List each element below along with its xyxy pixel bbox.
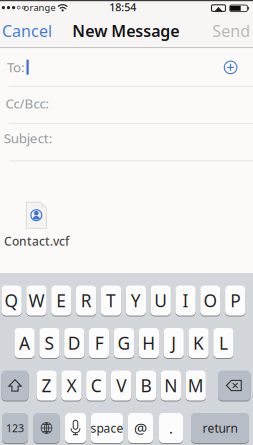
staticText: 18:54 <box>109 0 136 14</box>
staticText: D <box>68 331 81 354</box>
staticText: Send <box>212 20 250 41</box>
staticText: T <box>106 289 116 312</box>
staticText: orange <box>23 1 55 14</box>
button[interactable]: Q <box>1 285 22 316</box>
button[interactable]: A <box>14 327 35 358</box>
button[interactable]: return <box>191 412 249 443</box>
staticText: Cancel <box>2 20 52 41</box>
button[interactable]: Subject: <box>0 123 253 160</box>
staticText: W <box>28 289 44 312</box>
button[interactable]: To: <box>0 48 253 86</box>
staticText: B <box>140 374 151 397</box>
button[interactable]: Dictate <box>65 412 86 443</box>
button[interactable]: R <box>76 285 96 316</box>
button[interactable]: @ <box>128 412 153 443</box>
button[interactable]: K <box>188 327 209 358</box>
button[interactable]: O <box>200 285 220 316</box>
staticText: J <box>171 331 176 354</box>
button[interactable]: I <box>175 285 196 316</box>
button[interactable]: T <box>101 285 121 316</box>
staticText: K <box>193 331 204 354</box>
button[interactable]: S <box>39 327 60 358</box>
button[interactable]: Cc/Bcc: <box>0 86 253 123</box>
button[interactable]: . <box>159 412 183 443</box>
staticText: F <box>95 331 104 354</box>
button[interactable]: D <box>64 327 84 358</box>
staticText: G <box>117 331 130 354</box>
staticText: Y <box>131 289 141 312</box>
staticText: O <box>203 289 217 312</box>
button[interactable]: Cancel <box>2 20 52 41</box>
button[interactable]: Next Keyboard <box>33 412 59 443</box>
button[interactable]: U <box>151 285 171 316</box>
button[interactable]: J <box>164 327 184 358</box>
staticText: Cc/Bcc: <box>5 94 49 112</box>
staticText: Subject: <box>4 129 53 147</box>
staticText: To: <box>7 58 25 76</box>
staticText: C <box>91 374 102 397</box>
staticText: U <box>154 289 167 312</box>
staticText: @ <box>134 418 147 438</box>
staticText: V <box>116 374 126 397</box>
button[interactable]: G <box>114 327 134 358</box>
button[interactable]: Shift <box>1 370 28 401</box>
staticText: H <box>142 331 155 354</box>
button[interactable]: B <box>136 370 156 401</box>
button[interactable]: M <box>186 370 206 401</box>
button[interactable]: Z <box>36 370 57 401</box>
staticText: Z <box>42 374 52 397</box>
button[interactable]: space <box>91 412 123 443</box>
button[interactable]: Contact.vcf <box>0 196 73 249</box>
button[interactable]: 123 <box>2 412 28 443</box>
button[interactable]: E <box>51 285 71 316</box>
staticText: P <box>230 289 240 312</box>
staticText: return <box>202 420 237 436</box>
button[interactable]: C <box>86 370 106 401</box>
button[interactable]: P <box>225 285 245 316</box>
staticText: E <box>56 289 66 312</box>
staticText: N <box>164 374 177 397</box>
button[interactable]: F <box>89 327 109 358</box>
button[interactable]: W <box>26 285 47 316</box>
staticText: I <box>183 289 189 312</box>
staticText: New Message <box>72 20 179 41</box>
button[interactable]: N <box>161 370 181 401</box>
button[interactable]: Delete <box>218 370 251 401</box>
staticText: S <box>44 331 54 354</box>
button[interactable]: Send <box>212 20 250 41</box>
staticText: 123 <box>6 421 24 435</box>
staticText: space <box>90 420 123 436</box>
staticText: M <box>188 374 204 397</box>
staticText: Q <box>5 289 19 312</box>
staticText: A <box>19 331 30 354</box>
button[interactable]: L <box>213 327 233 358</box>
staticText: . <box>169 418 173 438</box>
staticText: Contact.vcf <box>4 233 69 249</box>
button[interactable]: Add Contact <box>224 61 237 74</box>
button[interactable]: V <box>111 370 131 401</box>
button[interactable]: H <box>139 327 159 358</box>
staticText: L <box>219 331 228 354</box>
button[interactable]: X <box>61 370 82 401</box>
staticText: R <box>81 289 92 312</box>
button[interactable]: Y <box>126 285 146 316</box>
staticText: X <box>66 374 76 397</box>
